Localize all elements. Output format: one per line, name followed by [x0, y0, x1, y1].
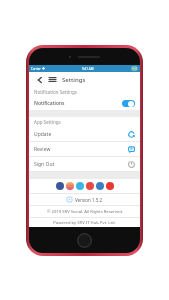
button[interactable]: YouTube [86, 182, 94, 190]
staticText: Settings [62, 76, 86, 84]
button[interactable]: Pinterest [106, 182, 114, 190]
staticText: App Settings [34, 119, 61, 125]
staticText: Carrier [31, 67, 41, 71]
button[interactable]: Instagram [66, 182, 74, 190]
staticText: Powered by SRV IT Hub Pvt. Ltd. [53, 220, 116, 226]
button[interactable]: Version 1.5.2 [29, 194, 140, 205]
staticText: © 2019 SRV Social. All Rights Reserved. [47, 209, 123, 215]
button[interactable]: Facebook [56, 182, 64, 190]
staticText: Sign Out [34, 161, 55, 168]
staticText: 9:41 AM [82, 67, 94, 71]
button[interactable]: Update [29, 127, 140, 141]
staticText: Notification Settings [34, 89, 77, 95]
button[interactable]: Sign Out [29, 157, 140, 171]
staticText: Update [34, 131, 52, 138]
button[interactable]: Review [29, 142, 140, 156]
staticText: Notifications [34, 100, 65, 107]
staticText: Review [34, 146, 51, 153]
button[interactable]: Back [34, 74, 45, 85]
button[interactable]: LinkedIn [96, 182, 104, 190]
button[interactable]: Menu [47, 74, 58, 85]
button[interactable]: Twitter [76, 182, 84, 190]
button[interactable]: Notifications [29, 97, 140, 110]
staticText: Version 1.5.2 [75, 197, 103, 203]
